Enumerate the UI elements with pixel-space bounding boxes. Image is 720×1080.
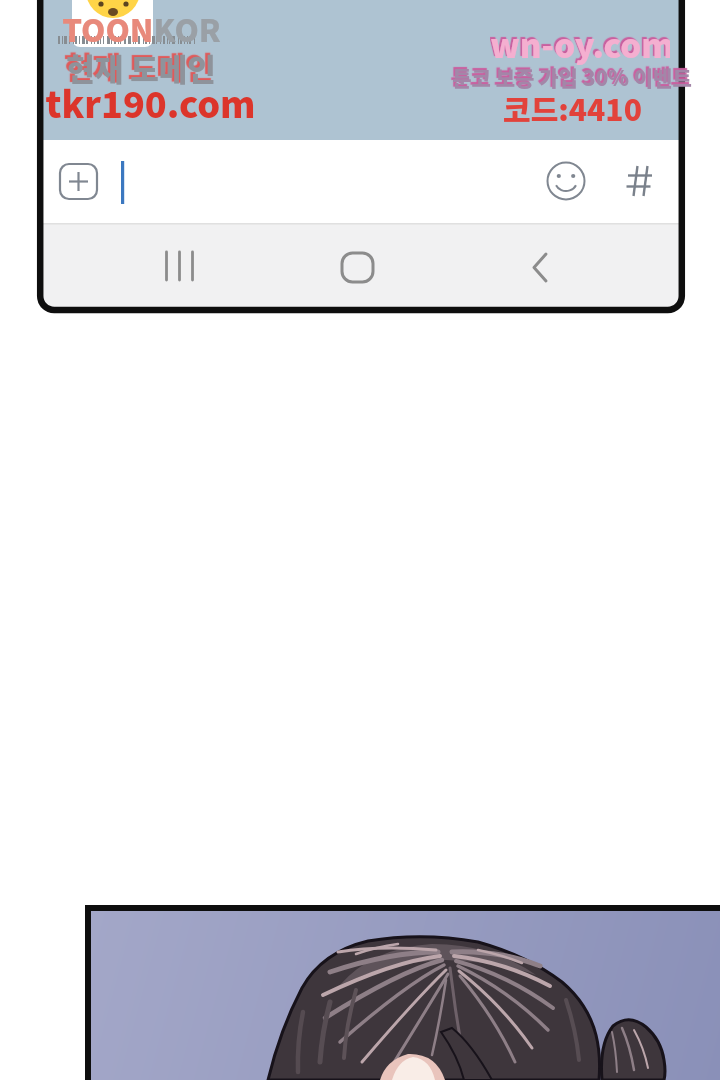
button[interactable] [544, 158, 588, 202]
button[interactable] [516, 240, 572, 294]
button[interactable] [40, 46, 260, 120]
staticText: TOONKOR [62, 6, 221, 51]
staticText: 현재 도메인 [66, 45, 216, 90]
staticText: 툰코 보증 가입 30% 이벤트 [452, 62, 692, 92]
staticText: 코드:4410 [503, 86, 642, 129]
staticText: tkr190.com [45, 76, 256, 128]
staticText: wn-oy.com [490, 20, 670, 68]
button[interactable] [56, 160, 100, 204]
button[interactable] [328, 240, 388, 294]
button[interactable] [450, 20, 690, 120]
button[interactable] [616, 160, 658, 202]
button[interactable] [152, 240, 208, 294]
